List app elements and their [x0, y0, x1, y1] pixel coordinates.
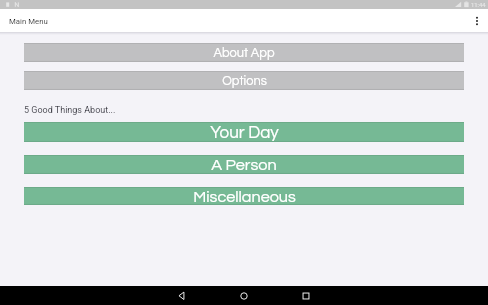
button[interactable]: Home [213, 286, 275, 305]
button[interactable]: Your Day [24, 122, 464, 142]
staticText: Main Menu [9, 17, 48, 26]
button[interactable]: About App [24, 43, 464, 62]
staticText: Options [222, 75, 267, 88]
staticText: About App [213, 47, 275, 60]
button[interactable]: Options [24, 71, 464, 90]
staticText: Your Day [210, 124, 279, 142]
staticText: 5 Good Things About... [24, 105, 116, 116]
button[interactable]: Recent apps [275, 286, 337, 305]
button[interactable]: Miscellaneous [24, 187, 464, 205]
button[interactable]: Back [151, 286, 213, 305]
button[interactable]: More options [466, 9, 488, 32]
staticText: 11:44 [471, 2, 486, 9]
staticText: A Person [211, 157, 277, 174]
button[interactable]: A Person [24, 155, 464, 174]
staticText: Miscellaneous [193, 189, 296, 206]
